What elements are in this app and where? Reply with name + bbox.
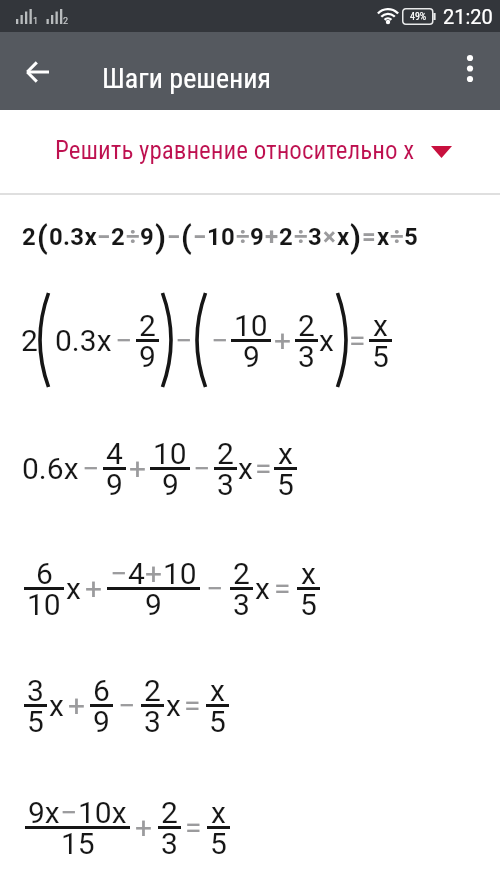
- staticText: −: [118, 688, 136, 723]
- staticText: x: [278, 436, 293, 471]
- staticText: 9x: [28, 795, 60, 830]
- staticText: 49%: [410, 11, 427, 23]
- staticText: −: [115, 323, 133, 358]
- staticText: +: [85, 571, 103, 606]
- staticText: x: [301, 556, 316, 591]
- staticText: =: [185, 810, 202, 845]
- staticText: (: [181, 219, 193, 255]
- staticText: 2: [22, 223, 37, 251]
- staticText: +: [145, 556, 163, 591]
- staticText: +: [68, 688, 86, 723]
- staticText: ÷: [390, 223, 404, 251]
- staticText: 10: [27, 587, 61, 622]
- staticText: 2: [298, 308, 315, 343]
- staticText: ): [155, 219, 167, 255]
- staticText: 0.6x: [22, 451, 79, 486]
- staticText: −: [60, 795, 78, 830]
- staticText: 9: [162, 467, 179, 502]
- staticText: Решить уравнение относительно x: [55, 136, 415, 165]
- staticText: ÷: [126, 223, 140, 251]
- staticText: ÷: [294, 223, 308, 251]
- staticText: −: [193, 223, 207, 251]
- staticText: =: [349, 323, 366, 358]
- staticText: 9: [139, 339, 156, 374]
- staticText: 4: [128, 556, 145, 591]
- staticText: 10x: [78, 795, 127, 830]
- staticText: −: [110, 556, 128, 591]
- staticText: 9: [93, 704, 110, 739]
- staticText: ÷: [236, 223, 250, 251]
- staticText: 10: [153, 436, 187, 471]
- staticText: −: [193, 451, 211, 486]
- staticText: x: [66, 571, 81, 606]
- staticText: 5: [27, 704, 44, 739]
- staticText: 9: [145, 587, 162, 622]
- staticText: x: [49, 688, 64, 723]
- staticText: 5: [277, 467, 294, 502]
- staticText: x: [337, 223, 350, 251]
- staticText: =: [184, 688, 201, 723]
- staticText: 9: [140, 223, 155, 251]
- button[interactable]: [14, 48, 62, 96]
- staticText: =: [255, 451, 272, 486]
- staticText: −: [97, 223, 111, 251]
- staticText: 5: [210, 826, 227, 861]
- staticText: ): [350, 219, 362, 255]
- staticText: (: [37, 219, 49, 255]
- staticText: 9: [243, 339, 260, 374]
- staticText: +: [135, 810, 153, 845]
- staticText: =: [274, 571, 291, 606]
- staticText: x: [166, 688, 181, 723]
- staticText: +: [129, 451, 147, 486]
- staticText: 3: [27, 673, 44, 708]
- staticText: 0.3x: [49, 223, 97, 251]
- staticText: 5: [209, 704, 226, 739]
- staticText: x: [255, 571, 270, 606]
- staticText: 15: [61, 826, 95, 861]
- staticText: +: [265, 223, 279, 251]
- staticText: +: [274, 323, 292, 358]
- staticText: 2: [63, 16, 69, 27]
- staticText: 1: [33, 16, 39, 27]
- button[interactable]: [448, 48, 492, 92]
- staticText: 2: [279, 223, 294, 251]
- staticText: 6: [93, 673, 110, 708]
- staticText: Шаги решения: [102, 62, 272, 95]
- staticText: 2: [217, 436, 234, 471]
- staticText: 9: [106, 467, 123, 502]
- staticText: 2: [233, 556, 250, 591]
- staticText: 9: [250, 223, 265, 251]
- staticText: −: [175, 323, 193, 358]
- staticText: x: [238, 451, 253, 486]
- staticText: 10: [163, 556, 197, 591]
- staticText: x: [377, 223, 390, 251]
- staticText: 4: [106, 436, 123, 471]
- staticText: x: [211, 795, 226, 830]
- staticText: 10: [234, 308, 268, 343]
- staticText: x: [319, 323, 334, 358]
- staticText: 3: [217, 467, 234, 502]
- staticText: x: [210, 673, 225, 708]
- staticText: 3: [298, 339, 315, 374]
- staticText: 5: [300, 587, 317, 622]
- staticText: 5: [372, 339, 389, 374]
- staticText: −: [82, 451, 100, 486]
- staticText: 21:20: [443, 5, 493, 28]
- staticText: 3: [144, 704, 161, 739]
- button[interactable]: Решить уравнение относительно x: [0, 122, 500, 178]
- staticText: 2: [144, 673, 161, 708]
- staticText: 6: [36, 556, 53, 591]
- staticText: 3: [161, 826, 178, 861]
- staticText: 0.3x: [55, 323, 112, 358]
- staticText: 2: [161, 795, 178, 830]
- staticText: 2: [21, 323, 38, 358]
- staticText: =: [362, 223, 377, 251]
- staticText: 2: [139, 308, 156, 343]
- staticText: ×: [323, 223, 337, 251]
- staticText: 3: [308, 223, 323, 251]
- staticText: −: [167, 223, 181, 251]
- staticText: 2: [111, 223, 126, 251]
- staticText: 10: [207, 223, 236, 251]
- staticText: −: [206, 571, 224, 606]
- staticText: x: [373, 308, 388, 343]
